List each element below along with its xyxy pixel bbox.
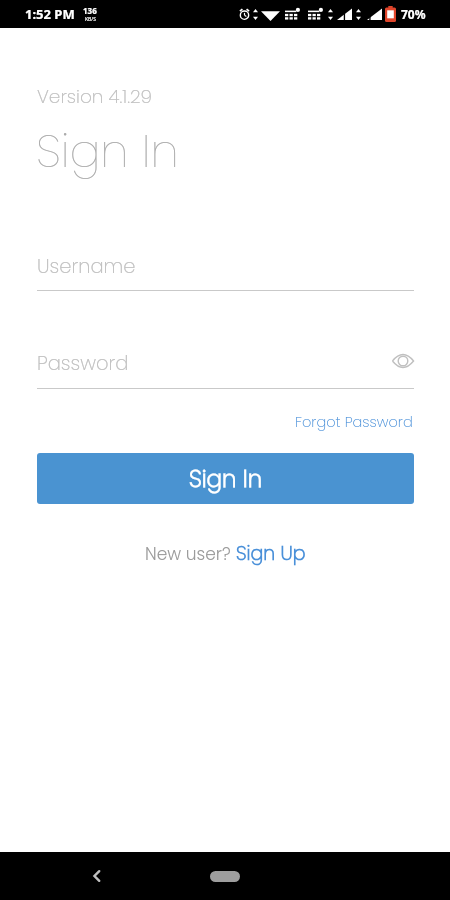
staticText: Sign In	[36, 119, 179, 183]
button[interactable]: Back	[80, 859, 114, 893]
staticText: Password	[37, 350, 129, 377]
button[interactable]: Sign In	[37, 453, 414, 504]
staticText: Sign In	[189, 463, 263, 495]
staticText: Username	[37, 253, 136, 280]
staticText: Forgot Password	[295, 412, 413, 432]
staticText: 136	[83, 5, 97, 16]
button[interactable]: Forgot Password	[295, 412, 413, 432]
button[interactable]: Home	[195, 859, 255, 893]
staticText: New user?	[145, 542, 236, 566]
button[interactable]: Sign Up	[236, 540, 306, 567]
staticText: Sign Up	[236, 540, 306, 567]
staticText: Version 4.1.29	[37, 84, 152, 110]
staticText: 1:52 PM	[25, 5, 75, 23]
staticText: KB/S	[85, 16, 96, 23]
staticText: 70%	[401, 6, 426, 22]
button[interactable]: Show password	[388, 346, 418, 376]
